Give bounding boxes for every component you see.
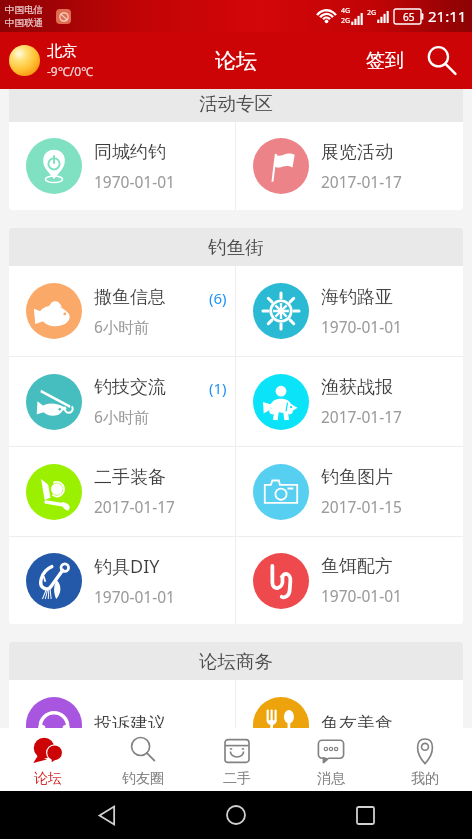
staticText: 北京 — [47, 42, 77, 61]
staticText: 同城约钓 — [94, 141, 166, 164]
staticText: 论坛商务 — [199, 650, 273, 673]
staticText: 投诉建议 — [94, 713, 166, 728]
staticText: 海钓路亚 — [321, 286, 393, 309]
staticText: 1970-01-01 — [94, 171, 175, 192]
staticText: 1970-01-01 — [94, 586, 175, 607]
staticText: 2017-01-15 — [321, 496, 402, 517]
button[interactable]: Recents — [343, 793, 387, 837]
staticText: 6小时前 — [94, 316, 150, 337]
staticText: 2017-01-17 — [94, 496, 175, 517]
staticText: 2017-01-17 — [321, 171, 402, 192]
staticText: -9℃/0℃ — [47, 63, 93, 79]
button[interactable]: 消息 — [284, 728, 378, 791]
staticText: 钓技交流 — [94, 376, 166, 399]
staticText: 2G — [341, 16, 351, 26]
staticText: 渔获战报 — [321, 376, 393, 399]
staticText: 消息 — [317, 770, 345, 788]
staticText: 我的 — [411, 770, 439, 788]
staticText: 撒鱼信息 — [94, 286, 166, 309]
staticText: 钓鱼街 — [208, 236, 264, 259]
button[interactable]: 二手 — [190, 728, 284, 791]
staticText: 1970-01-01 — [321, 316, 402, 337]
staticText: 65 — [403, 10, 415, 24]
staticText: 钓具DIY — [94, 554, 160, 579]
staticText: 二手装备 — [94, 466, 166, 489]
staticText: 中国电信 — [5, 4, 43, 16]
staticText: 4G — [341, 6, 351, 16]
button[interactable]: 鱼友美食 — [236, 680, 463, 728]
button[interactable]: 渔获战报 — [236, 357, 463, 446]
button[interactable]: 撒鱼信息 — [9, 266, 235, 356]
button[interactable]: 钓具DIY — [9, 537, 235, 624]
staticText: (6) — [209, 288, 227, 308]
staticText: 21:11 — [428, 6, 467, 26]
staticText: 鱼友美食 — [321, 713, 393, 728]
staticText: 钓鱼图片 — [321, 466, 393, 489]
staticText: 2G — [367, 8, 377, 18]
button[interactable]: 投诉建议 — [9, 680, 235, 728]
button[interactable]: 签到 — [360, 32, 410, 89]
staticText: 活动专区 — [199, 92, 273, 115]
button[interactable]: Back — [85, 793, 129, 837]
button[interactable]: 我的 — [378, 728, 472, 791]
staticText: 展览活动 — [321, 141, 393, 164]
staticText: 6小时前 — [94, 406, 150, 427]
staticText: 中国联通 — [5, 17, 43, 29]
staticText: 签到 — [366, 49, 404, 73]
staticText: 钓友圈 — [122, 770, 164, 788]
button[interactable]: 论坛 — [0, 728, 95, 791]
button[interactable]: 北京 — [0, 32, 93, 89]
button[interactable]: 展览活动 — [236, 122, 463, 210]
button[interactable]: 海钓路亚 — [236, 266, 463, 356]
button[interactable]: 钓友圈 — [95, 728, 190, 791]
staticText: 1970-01-01 — [321, 585, 402, 606]
staticText: 鱼饵配方 — [321, 555, 393, 578]
button[interactable]: Home — [214, 793, 258, 837]
staticText: 论坛 — [34, 770, 62, 788]
staticText: 2017-01-17 — [321, 406, 402, 427]
button[interactable]: Search — [410, 32, 472, 89]
staticText: 论坛 — [215, 48, 257, 74]
button[interactable]: 二手装备 — [9, 447, 235, 536]
button[interactable]: 钓技交流 — [9, 357, 235, 446]
staticText: 二手 — [223, 770, 251, 788]
staticText: (1) — [209, 378, 227, 398]
button[interactable]: 同城约钓 — [9, 122, 235, 210]
button[interactable]: 钓鱼图片 — [236, 447, 463, 536]
button[interactable]: 鱼饵配方 — [236, 537, 463, 624]
